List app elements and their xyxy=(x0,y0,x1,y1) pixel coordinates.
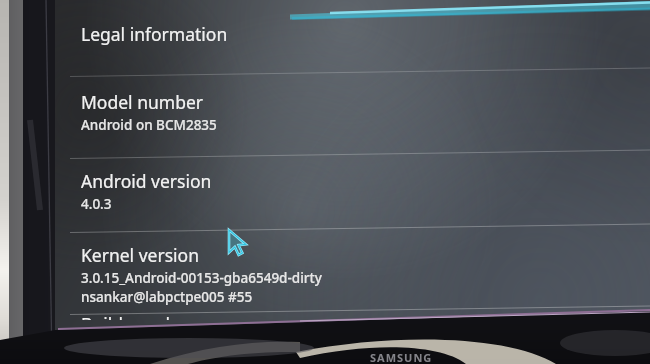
staticText: Legal information xyxy=(81,22,228,46)
staticText: 4.0.3 xyxy=(81,195,112,213)
button[interactable]: Build number xyxy=(55,314,650,322)
staticText: Kernel version xyxy=(81,243,199,267)
staticText: 3.0.15_Android-00153-gba6549d-dirty xyxy=(81,269,322,287)
staticText: Model number xyxy=(81,90,204,114)
staticText: Android version xyxy=(81,169,212,193)
button[interactable]: Kernel version xyxy=(55,232,650,314)
staticText: Build number xyxy=(81,312,194,320)
button[interactable]: Android version xyxy=(55,158,650,232)
staticText: SAMSUNG xyxy=(370,350,433,364)
button[interactable]: Legal information xyxy=(55,0,650,76)
staticText: nsankar@labpctpe005 #55 xyxy=(81,288,253,306)
staticText: Android on BCM2835 xyxy=(81,116,217,134)
button[interactable]: Model number xyxy=(55,76,650,158)
